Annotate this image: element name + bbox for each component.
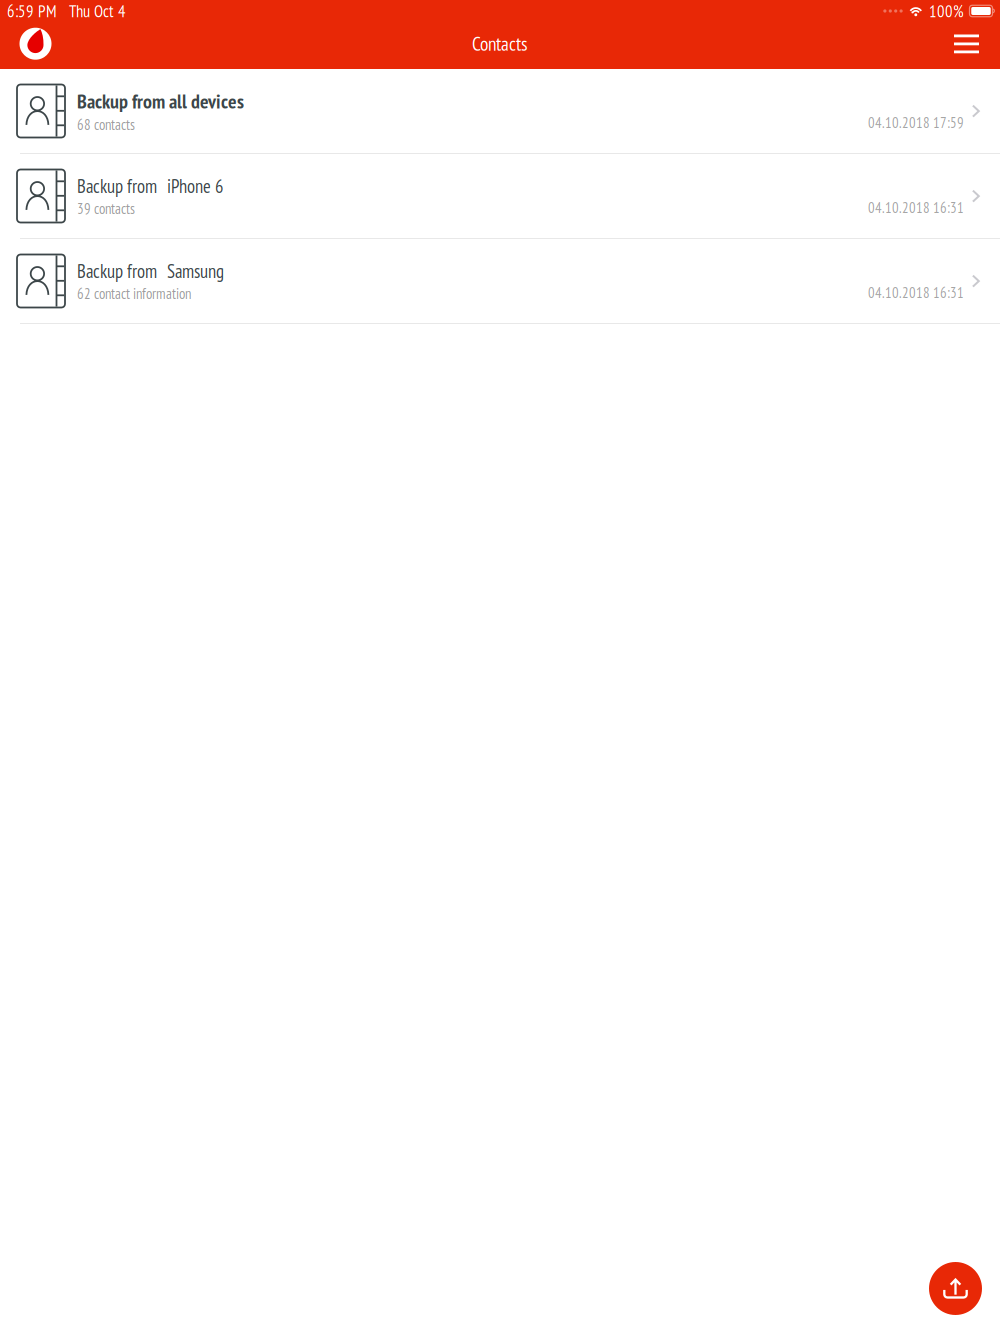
- button[interactable]: Upload backup: [929, 1262, 982, 1315]
- staticText: Contacts: [472, 31, 528, 56]
- button[interactable]: Backup from: [0, 239, 1000, 324]
- staticText: Backup from all devices: [77, 88, 244, 114]
- staticText: 6:59 PM: [7, 0, 57, 22]
- staticText: 68 contacts: [77, 115, 135, 134]
- button[interactable]: Backup from all devices: [0, 69, 1000, 154]
- staticText: 04.10.2018 16:31: [868, 283, 964, 302]
- staticText: 04.10.2018 17:59: [868, 113, 964, 132]
- staticText: Backup from: [77, 174, 157, 198]
- button[interactable]: Menu: [943, 21, 990, 66]
- staticText: 04.10.2018 16:31: [868, 198, 964, 217]
- staticText: Backup from: [77, 259, 157, 283]
- staticText: Samsung: [167, 259, 224, 283]
- button[interactable]: Backup from: [0, 154, 1000, 239]
- staticText: 62 contact information: [77, 284, 191, 303]
- staticText: iPhone 6: [167, 174, 223, 198]
- staticText: 100%: [929, 0, 964, 22]
- staticText: Thu Oct 4: [69, 0, 126, 22]
- staticText: 39 contacts: [77, 199, 135, 218]
